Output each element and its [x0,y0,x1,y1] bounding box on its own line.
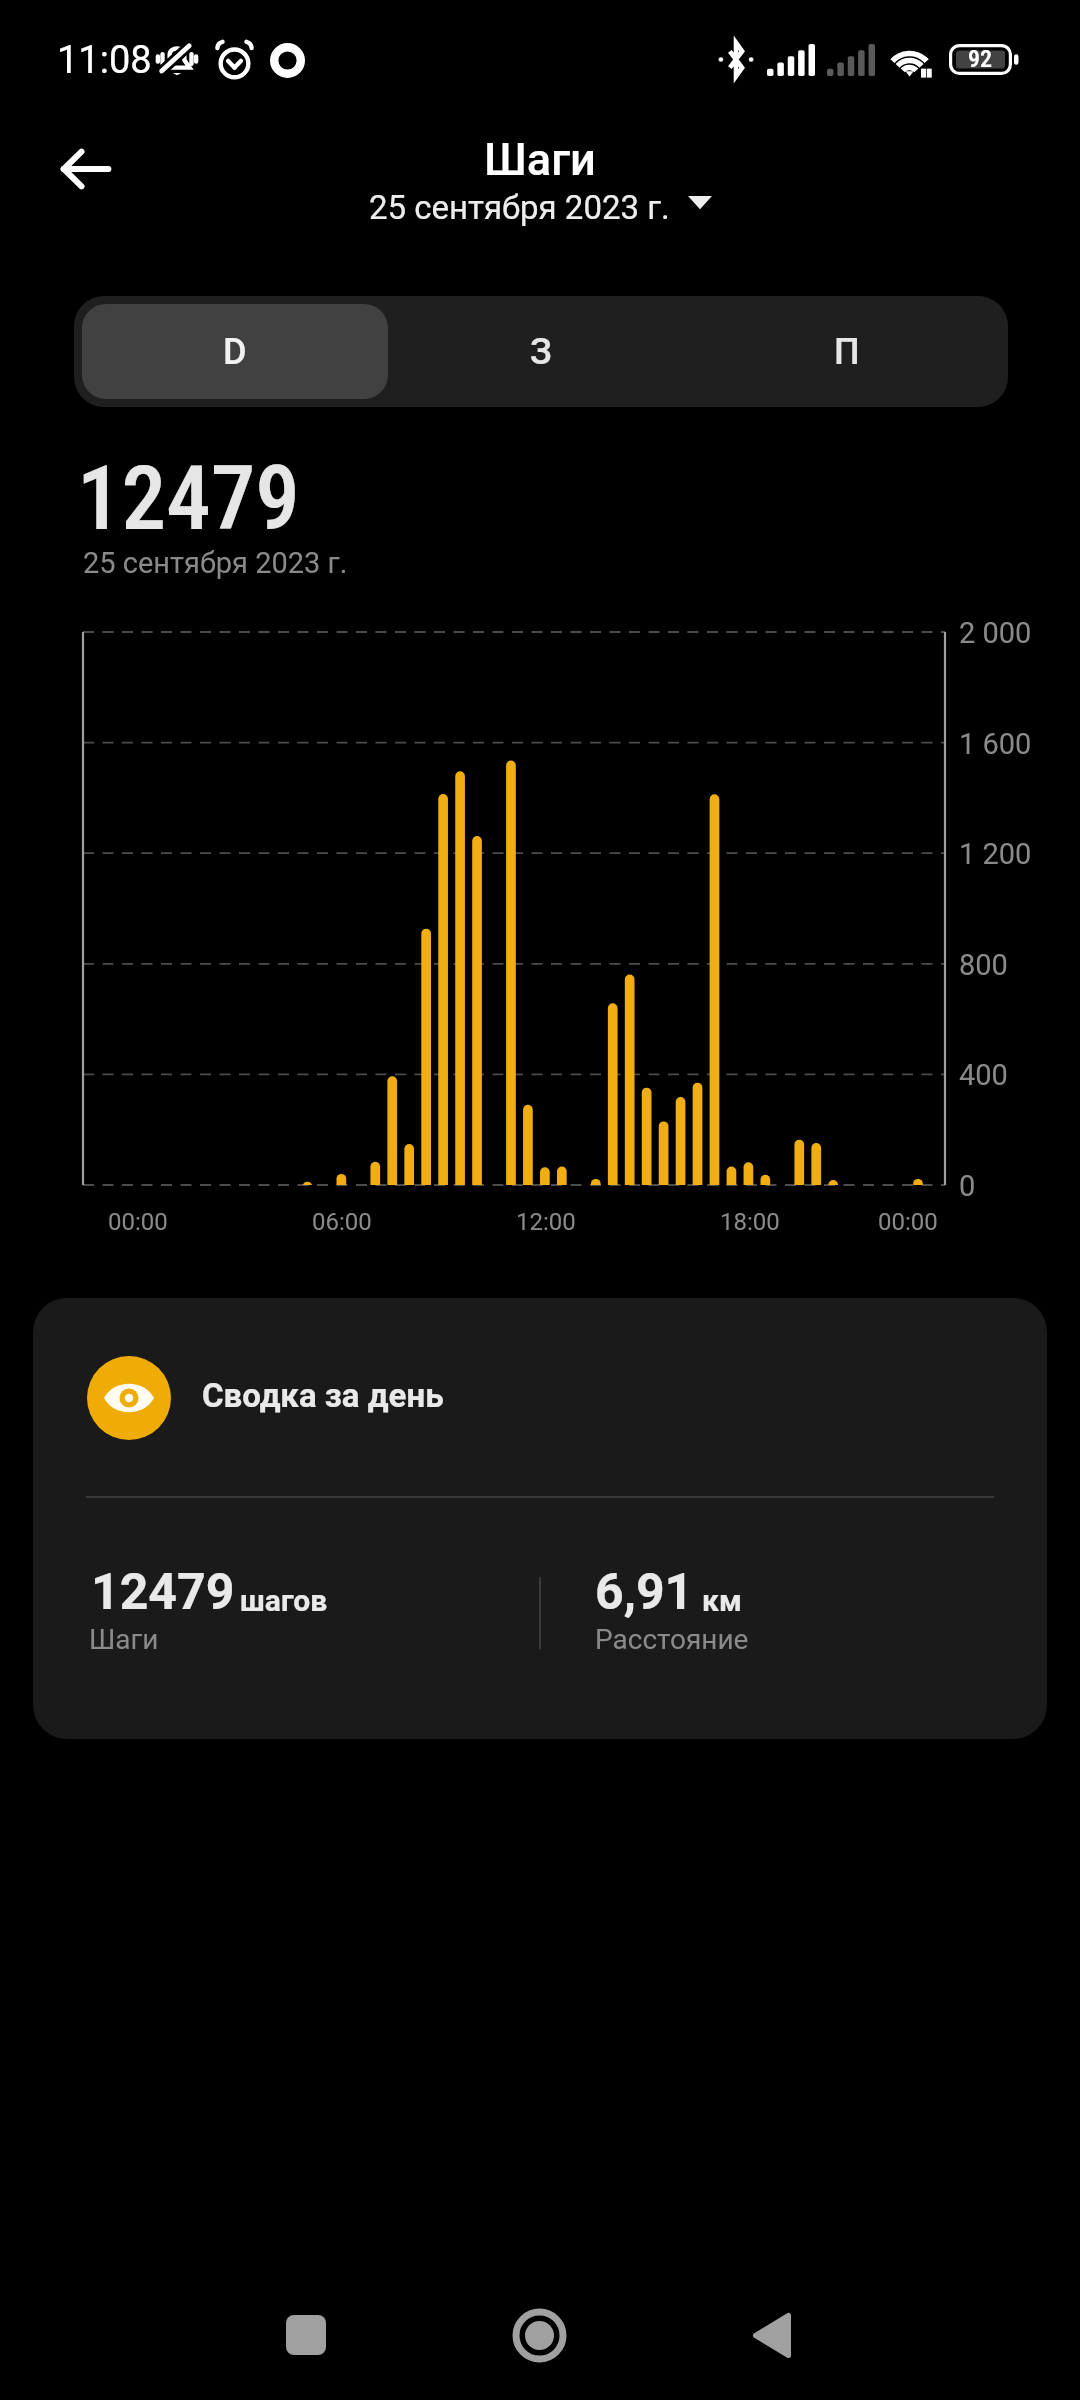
staticText: 25 сентября 2023 г. [369,188,670,227]
staticText: 18:00 [720,1208,780,1236]
staticText: шагов [240,1583,328,1618]
staticText: 92 [968,45,993,73]
staticText: 00:00 [878,1208,938,1236]
button[interactable]: П [694,304,1000,399]
staticText: Расстояние [595,1623,749,1656]
staticText: Шаги [89,1623,159,1656]
staticText: 12:00 [516,1208,576,1236]
staticText: 25 сентября 2023 г. [83,546,348,580]
staticText: 1 600 [959,727,1032,761]
staticText: D [223,331,247,373]
button[interactable]: D [82,304,388,399]
button[interactable]: Back [732,2295,812,2375]
staticText: 12479 [77,446,300,550]
button[interactable]: Home [499,2295,579,2375]
staticText: 00:00 [108,1208,168,1236]
staticText: 2 000 [959,616,1032,650]
staticText: 800 [959,948,1008,982]
staticText: П [834,331,860,373]
staticText: Шаги [484,133,596,186]
button[interactable]: З [388,304,694,399]
staticText: 6,91 [595,1563,694,1622]
staticText: 06:00 [312,1208,372,1236]
staticText: км [702,1583,742,1618]
staticText: 1 200 [959,837,1032,871]
staticText: 0 [959,1169,976,1203]
staticText: З [530,331,552,373]
button[interactable]: Сводка за день [33,1298,1047,1739]
button[interactable]: Back [41,124,131,214]
staticText: 400 [959,1058,1008,1092]
staticText: Сводка за день [202,1376,444,1415]
staticText: 11:08 [57,38,152,83]
staticText: 12479 [91,1563,235,1622]
button[interactable]: Recent apps [266,2295,346,2375]
button[interactable]: 25 сентября 2023 г. [365,185,716,230]
